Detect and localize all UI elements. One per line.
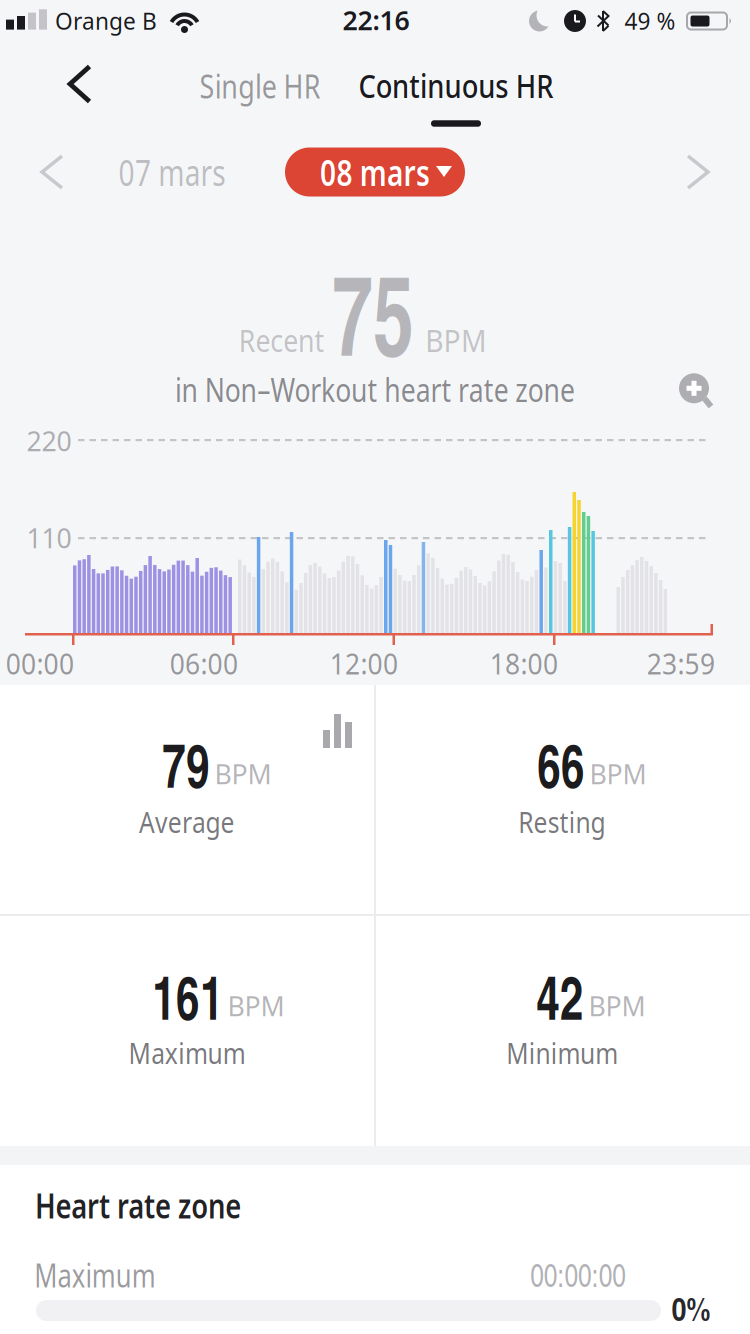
staticText: 66 bbox=[533, 721, 589, 806]
staticText: Maximum bbox=[117, 1033, 256, 1072]
staticText: Average bbox=[130, 802, 244, 841]
staticText: 110 bbox=[26, 520, 71, 556]
staticText: Resting bbox=[510, 802, 614, 841]
staticText: BPM bbox=[214, 756, 271, 792]
staticText: 08 mars bbox=[304, 148, 445, 196]
staticText: Single HR bbox=[188, 65, 332, 107]
staticText: Heart rate zone bbox=[7, 1182, 268, 1228]
staticText: Orange B bbox=[55, 6, 157, 36]
button[interactable]: Back bbox=[52, 54, 112, 114]
staticText: Maximum bbox=[19, 1254, 171, 1296]
staticText: 22:16 bbox=[342, 2, 409, 38]
button[interactable]: Continuous HR bbox=[337, 63, 575, 107]
staticText: Continuous HR bbox=[337, 63, 575, 107]
button[interactable]: Previous day bbox=[30, 150, 74, 194]
button[interactable]: Show chart bbox=[315, 709, 359, 753]
staticText: BPM bbox=[227, 988, 284, 1024]
staticText: BPM bbox=[422, 320, 489, 360]
staticText: 75 bbox=[322, 232, 424, 390]
button[interactable]: Next day bbox=[676, 150, 720, 194]
staticText: BPM bbox=[588, 988, 645, 1024]
staticText: 00:00 bbox=[2, 643, 78, 682]
button[interactable]: 08 mars bbox=[285, 147, 465, 196]
staticText: 00:00:00 bbox=[525, 1251, 631, 1296]
staticText: 0% bbox=[671, 1285, 710, 1331]
staticText: Recent bbox=[232, 320, 330, 360]
button[interactable]: 07 mars bbox=[103, 148, 240, 196]
button[interactable]: Zoom chart bbox=[672, 368, 716, 412]
button[interactable]: Single HR bbox=[188, 65, 332, 107]
staticText: 49 % bbox=[624, 6, 675, 36]
staticText: 42 bbox=[532, 953, 588, 1038]
staticText: 23:59 bbox=[643, 643, 719, 682]
staticText: 12:00 bbox=[326, 643, 402, 682]
staticText: 18:00 bbox=[486, 643, 562, 682]
staticText: 06:00 bbox=[166, 643, 242, 682]
staticText: 161 bbox=[146, 953, 230, 1038]
staticText: BPM bbox=[589, 756, 646, 792]
staticText: 220 bbox=[26, 423, 71, 459]
staticText: 79 bbox=[158, 721, 214, 806]
staticText: in Non–Workout heart rate zone bbox=[134, 368, 616, 411]
staticText: 07 mars bbox=[103, 148, 240, 196]
staticText: Minimum bbox=[495, 1033, 628, 1072]
